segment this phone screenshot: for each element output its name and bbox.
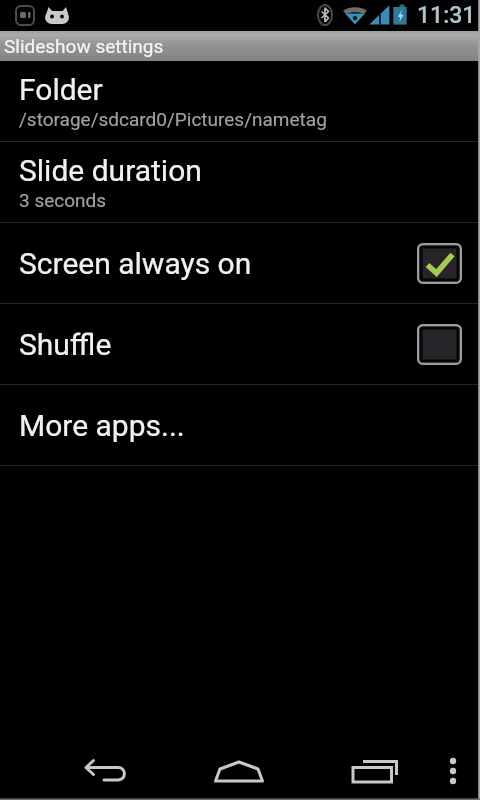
staticText: More apps... (19, 408, 185, 443)
staticText: Folder (19, 72, 103, 107)
button[interactable]: More apps... (0, 385, 480, 465)
button[interactable]: Screen always on (0, 223, 480, 303)
button[interactable]: More options (421, 722, 480, 800)
staticText: /storage/sdcard0/Pictures/nametag (19, 108, 327, 130)
staticText: Slide duration (19, 153, 202, 188)
button[interactable]: Recent apps (333, 722, 417, 800)
button[interactable]: Back (65, 722, 149, 800)
staticText: 3 seconds (19, 189, 107, 211)
staticText: 11:31 (417, 2, 476, 29)
button[interactable]: Shuffle (0, 304, 480, 384)
staticText: Screen always on (19, 246, 417, 281)
staticText: Slideshow settings (4, 35, 164, 57)
button[interactable]: Home (194, 722, 284, 800)
staticText: Shuffle (19, 327, 417, 362)
button[interactable]: Folder (0, 61, 480, 141)
button[interactable]: Slide duration (0, 142, 480, 222)
